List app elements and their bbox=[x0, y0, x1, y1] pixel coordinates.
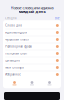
button[interactable]: Идиома недели bbox=[3, 29, 61, 36]
staticText: Мой словарь bbox=[5, 66, 23, 69]
button[interactable]: Поиск bbox=[26, 79, 38, 87]
button[interactable]: Фразовый глагол bbox=[3, 36, 61, 43]
staticText: Слово дня bbox=[5, 24, 22, 27]
button[interactable]: Профиль bbox=[43, 79, 55, 87]
staticText: Разговорная фраза bbox=[5, 45, 31, 48]
staticText: Фразовый глагол bbox=[5, 38, 29, 41]
staticText: Избранное bbox=[5, 73, 20, 76]
button[interactable]: Слово дня bbox=[3, 22, 61, 29]
button[interactable]: Главная bbox=[8, 79, 20, 87]
button[interactable]: Разговорная фраза bbox=[3, 43, 61, 50]
button[interactable]: Цитата дня bbox=[3, 57, 61, 64]
staticText: Идиома недели bbox=[5, 31, 27, 34]
staticText: каждый день bbox=[18, 9, 45, 14]
staticText: Сегодня bbox=[5, 16, 17, 20]
button[interactable]: Мой словарь bbox=[3, 64, 61, 71]
button[interactable]: Полезный сленг bbox=[3, 50, 61, 57]
button[interactable]: Избранное bbox=[3, 71, 61, 78]
button[interactable]: Сегодня bbox=[0, 16, 64, 20]
staticText: Цитата дня bbox=[5, 59, 20, 62]
staticText: Полезный сленг bbox=[5, 52, 27, 55]
staticText: Новое слово или идиома bbox=[10, 5, 53, 10]
staticText: Все bbox=[55, 16, 59, 20]
